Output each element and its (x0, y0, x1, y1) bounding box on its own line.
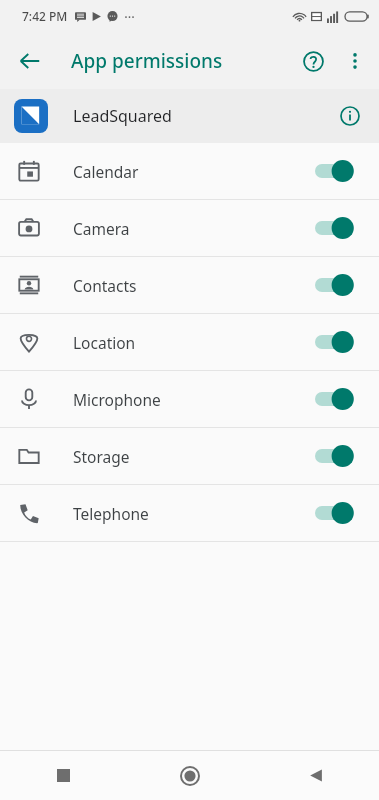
staticText: Storage (73, 446, 311, 467)
button[interactable]: Contacts permission toggle (311, 265, 361, 305)
button[interactable]: Location (0, 314, 379, 370)
button[interactable]: App info (331, 97, 369, 135)
staticText: LeadSquared (73, 105, 172, 127)
staticText: Contacts (73, 275, 311, 296)
button[interactable]: Microphone (0, 371, 379, 427)
staticText: Microphone (73, 389, 311, 410)
button[interactable]: Microphone permission toggle (311, 379, 361, 419)
staticText: Camera (73, 218, 311, 239)
staticText: Location (73, 332, 311, 353)
button[interactable]: Camera permission toggle (311, 208, 361, 248)
button[interactable]: LeadSquared (0, 89, 379, 143)
staticText: App permissions (71, 48, 223, 74)
button[interactable]: Calendar permission toggle (311, 151, 361, 191)
button[interactable]: Location permission toggle (311, 322, 361, 362)
button[interactable]: Back (253, 751, 379, 800)
button[interactable]: Help (291, 39, 335, 83)
button[interactable]: Recents (0, 751, 127, 800)
button[interactable]: Storage (0, 428, 379, 484)
staticText: Calendar (73, 161, 311, 182)
staticText: Telephone (73, 503, 311, 524)
staticText: 7:42 PM (22, 8, 68, 24)
button[interactable]: Storage permission toggle (311, 436, 361, 476)
button[interactable]: Telephone permission toggle (311, 493, 361, 533)
button[interactable]: Calendar (0, 143, 379, 199)
button[interactable]: Telephone (0, 485, 379, 541)
button[interactable]: Contacts (0, 257, 379, 313)
button[interactable]: Camera (0, 200, 379, 256)
button[interactable]: Home (127, 751, 253, 800)
button[interactable]: Back (8, 39, 52, 83)
button[interactable]: More options (335, 41, 375, 81)
